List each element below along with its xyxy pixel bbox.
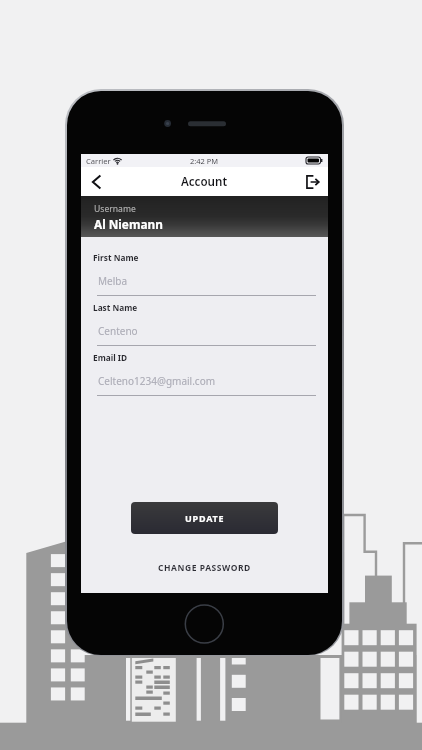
button[interactable]: Email ID (95, 351, 314, 396)
staticText: Carrier (86, 156, 111, 166)
staticText: Email ID (93, 352, 128, 363)
staticText: Melba (98, 274, 128, 288)
staticText: First Name (93, 252, 139, 263)
button[interactable]: Logout (300, 170, 324, 194)
staticText: Username (94, 203, 136, 215)
button[interactable]: Last Name (95, 301, 314, 346)
button[interactable]: UPDATE (131, 502, 278, 534)
staticText: Account (181, 174, 228, 190)
button[interactable]: CHANGE PASSWORD (81, 560, 328, 576)
button[interactable]: First Name (95, 251, 314, 296)
staticText: 2:42 PM (190, 156, 219, 166)
staticText: Celteno1234@gmail.com (98, 374, 216, 388)
button[interactable]: Back (84, 170, 108, 194)
staticText: CHANGE PASSWORD (158, 562, 251, 574)
staticText: Al Niemann (94, 216, 163, 232)
staticText: Last Name (93, 302, 138, 313)
staticText: UPDATE (185, 512, 225, 524)
staticText: Centeno (98, 324, 138, 338)
